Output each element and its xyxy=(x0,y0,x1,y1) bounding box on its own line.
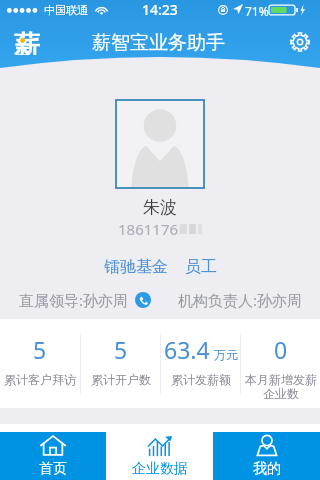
staticText: 企业数据 xyxy=(132,460,188,478)
staticText: 首页 xyxy=(39,460,67,478)
button[interactable]: Call leader xyxy=(135,292,151,308)
staticText: 万元 xyxy=(214,347,238,362)
button[interactable]: 首页 xyxy=(0,432,106,480)
staticText: 1861176 xyxy=(118,219,179,239)
button[interactable]: 0 xyxy=(241,319,320,408)
staticText: 本月新增发薪 企业数 xyxy=(245,372,317,402)
staticText: 我的 xyxy=(253,460,281,478)
staticText: 累计发薪额 xyxy=(171,372,231,387)
staticText: 5 xyxy=(33,334,47,365)
staticText: 直属领导:孙亦周 xyxy=(19,290,129,310)
button[interactable]: Avatar xyxy=(115,99,205,189)
staticText: 镭驰基金 xyxy=(104,257,168,277)
button[interactable]: 企业数据 xyxy=(106,432,213,480)
staticText: 朱波 xyxy=(143,197,177,218)
button[interactable]: 我的 xyxy=(213,432,320,480)
staticText: 薪智宝业务助手 xyxy=(92,31,225,55)
button[interactable]: 5 xyxy=(81,319,160,408)
button[interactable]: Settings xyxy=(287,29,313,55)
staticText: 累计开户数 xyxy=(91,372,151,387)
staticText: 累计客户拜访 xyxy=(4,372,76,387)
staticText: 员工 xyxy=(185,257,217,277)
staticText: 0 xyxy=(274,334,288,365)
staticText: 14:23 xyxy=(142,0,178,19)
staticText: 中国联通 xyxy=(44,3,88,17)
button[interactable]: 5 xyxy=(0,319,80,408)
staticText: 机构负责人:孙亦周 xyxy=(178,290,303,310)
staticText: 63.4 xyxy=(164,334,210,365)
staticText: 5 xyxy=(114,334,128,365)
button[interactable]: 63.4 xyxy=(161,319,240,408)
staticText: 薪 xyxy=(14,29,40,55)
staticText: 71% xyxy=(245,3,269,19)
